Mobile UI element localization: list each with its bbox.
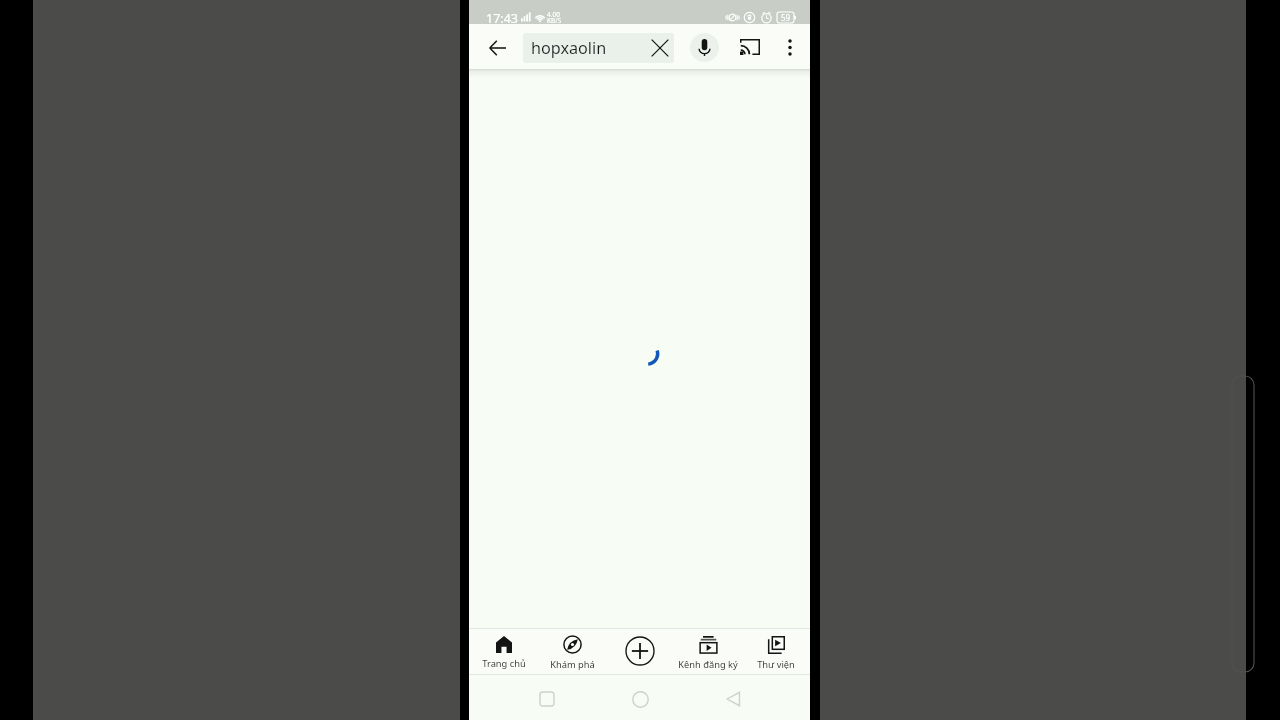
staticText: 4.00: [547, 10, 560, 19]
button[interactable]: More options: [774, 31, 806, 63]
staticText: Thư viện: [757, 658, 795, 671]
button[interactable]: hopxaolin: [523, 33, 674, 63]
staticText: Kênh đăng ký: [678, 658, 738, 671]
button[interactable]: Thư viện: [742, 629, 810, 674]
button[interactable]: Trang chủ: [469, 629, 538, 674]
staticText: Trang chủ: [482, 657, 526, 670]
button[interactable]: Back: [713, 679, 753, 719]
staticText: 17:43: [486, 10, 518, 24]
button[interactable]: Kênh đăng ký: [674, 629, 742, 674]
button[interactable]: Clear search: [646, 34, 674, 62]
button[interactable]: Voice search: [690, 33, 719, 62]
button[interactable]: Create: [606, 629, 674, 674]
button[interactable]: Cast: [734, 31, 766, 63]
staticText: hopxaolin: [531, 37, 607, 59]
button[interactable]: Back: [481, 32, 513, 64]
staticText: 59: [781, 12, 791, 23]
staticText: Khám phá: [550, 658, 595, 671]
button[interactable]: Recent apps: [527, 679, 567, 719]
button[interactable]: Home: [620, 679, 660, 719]
button[interactable]: Khám phá: [538, 629, 606, 674]
staticText: KB/S: [547, 16, 562, 25]
